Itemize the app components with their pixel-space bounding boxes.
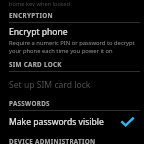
staticText: Set up SIM card lock bbox=[9, 79, 91, 91]
staticText: home key when locked bbox=[9, 0, 71, 6]
staticText: Encrypt phone bbox=[9, 26, 68, 38]
button[interactable]: home key when locked bbox=[0, 0, 144, 6]
other: Make passwords visible, enabled bbox=[122, 118, 133, 127]
staticText: PASSWORDS bbox=[9, 99, 50, 108]
button[interactable]: Encrypt phone bbox=[0, 23, 144, 57]
staticText: Make passwords visible bbox=[9, 116, 104, 128]
button[interactable]: Make passwords visible bbox=[0, 111, 144, 133]
staticText: ENCRYPTION bbox=[9, 11, 53, 20]
staticText: Require a numeric PIN or password to dec… bbox=[9, 39, 137, 55]
staticText: SIM CARD LOCK bbox=[9, 60, 62, 69]
button[interactable]: Set up SIM card lock bbox=[0, 72, 144, 97]
staticText: DEVICE ADMINISTRATION bbox=[9, 137, 96, 144]
